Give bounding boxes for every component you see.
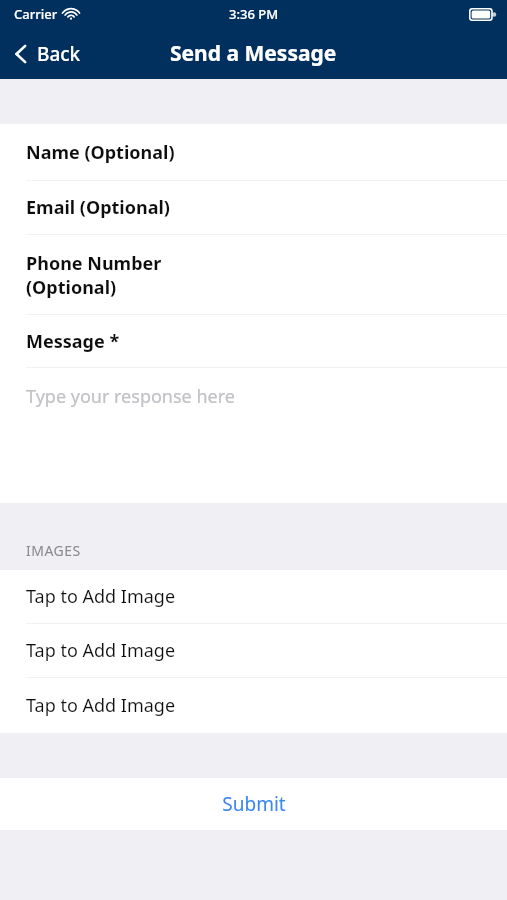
staticText: Tap to Add Image xyxy=(26,693,176,718)
button[interactable]: Tap to Add Image xyxy=(0,570,507,623)
staticText: Name (Optional) xyxy=(26,140,175,165)
button[interactable]: Type your response here xyxy=(0,368,507,503)
button[interactable]: Email (Optional) xyxy=(0,181,507,234)
staticText: Type your response here xyxy=(26,384,235,409)
button[interactable]: Back xyxy=(0,35,93,73)
button[interactable]: Phone Number (Optional) xyxy=(0,235,507,314)
button[interactable]: Tap to Add Image xyxy=(0,624,507,677)
staticText: Email (Optional) xyxy=(26,195,170,220)
staticText: IMAGES xyxy=(26,541,81,560)
staticText: Back xyxy=(37,41,81,67)
staticText: Tap to Add Image xyxy=(26,638,176,663)
staticText: Send a Message xyxy=(170,39,337,68)
staticText: 3:36 PM xyxy=(229,5,279,23)
staticText: Submit xyxy=(222,791,286,817)
button[interactable]: Tap to Add Image xyxy=(0,678,507,733)
staticText: Carrier xyxy=(14,5,58,23)
button[interactable]: Name (Optional) xyxy=(0,124,507,180)
staticText: Message * xyxy=(26,329,120,354)
button[interactable]: Submit xyxy=(0,778,507,830)
button[interactable]: Message * xyxy=(0,315,507,367)
staticText: Phone Number (Optional) xyxy=(26,251,162,299)
staticText: Tap to Add Image xyxy=(26,584,176,609)
